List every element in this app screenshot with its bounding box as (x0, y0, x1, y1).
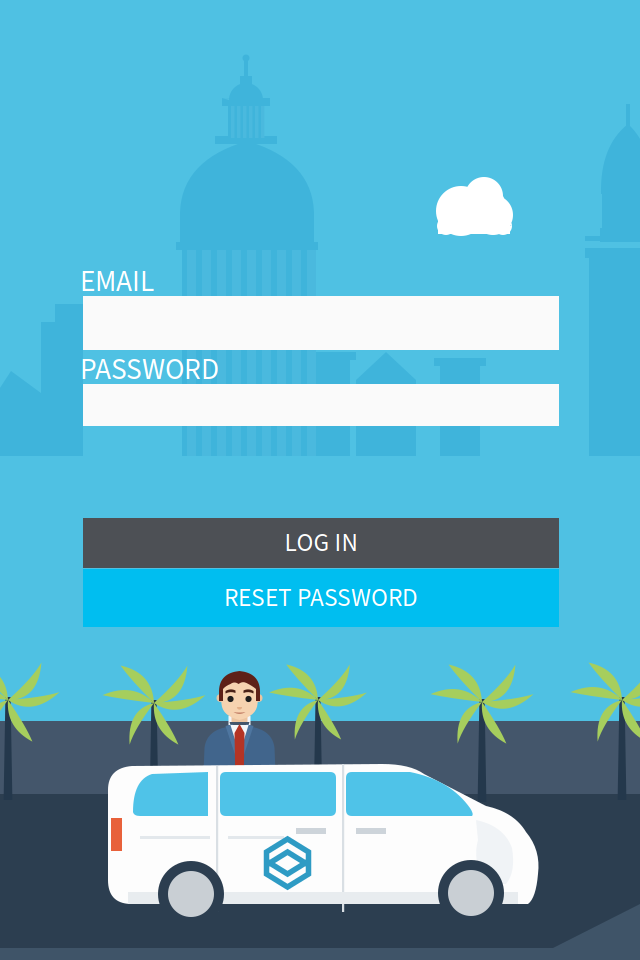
staticText: PASSWORD (80, 349, 219, 391)
staticText: EMAIL (80, 261, 154, 303)
staticText: LOG IN (284, 525, 357, 561)
staticText: RESET PASSWORD (224, 580, 418, 616)
button[interactable]: LOG IN (83, 518, 559, 568)
button[interactable]: RESET PASSWORD (83, 569, 559, 627)
